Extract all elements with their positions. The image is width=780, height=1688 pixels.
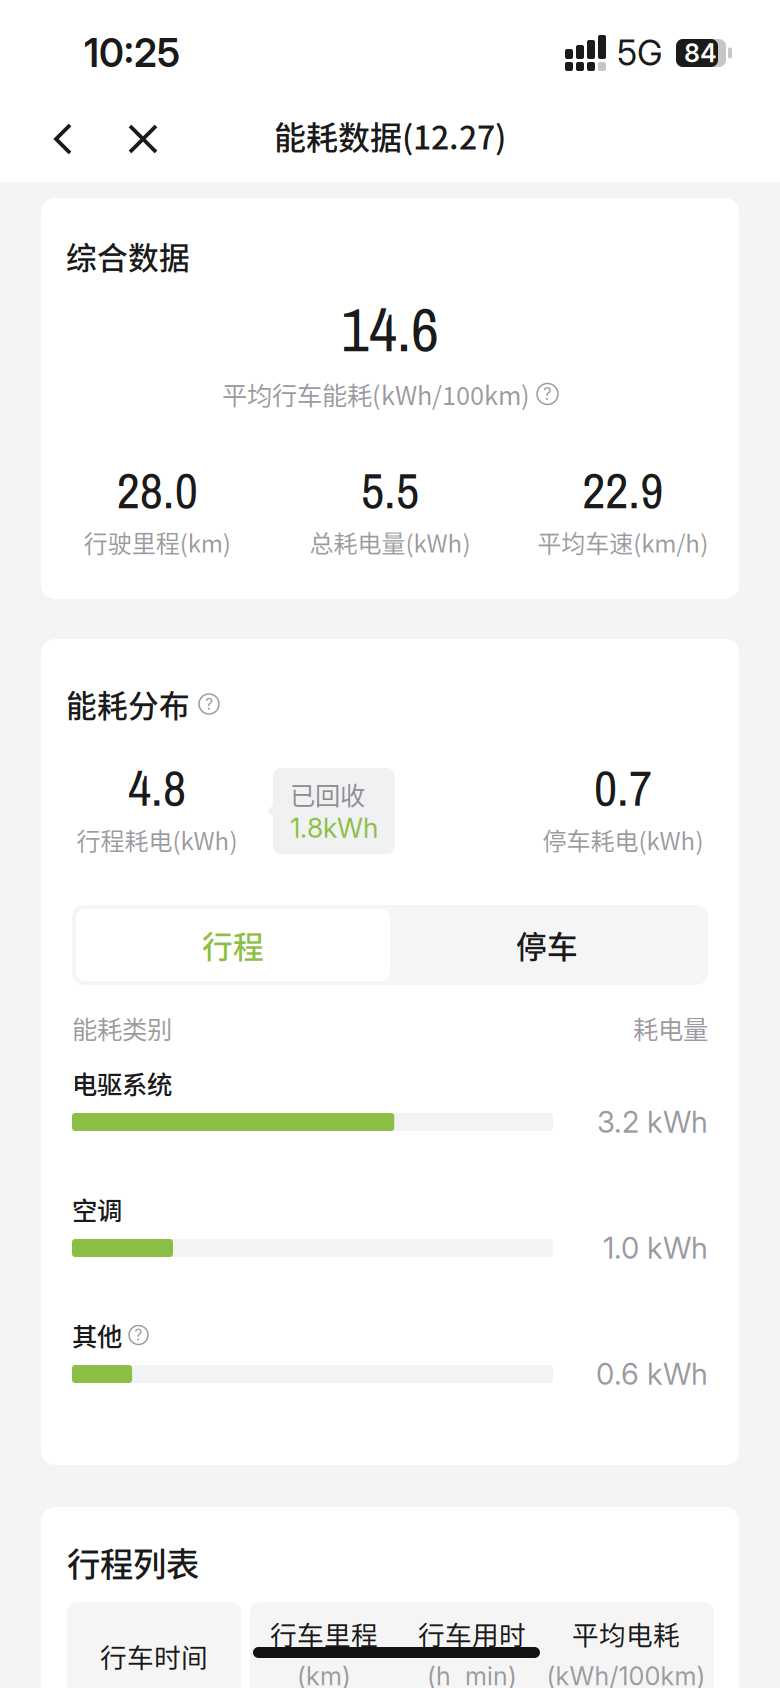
staticText: 1.0 kWh: [603, 1230, 708, 1266]
staticText: 5G: [617, 32, 663, 74]
staticText: 能耗类别: [72, 1010, 172, 1046]
staticText: (h min): [427, 1661, 517, 1688]
staticText: 其他: [72, 1317, 122, 1353]
staticText: 综合数据: [66, 234, 190, 278]
staticText: 停车耗电(kWh): [542, 822, 703, 857]
button[interactable]: 停车: [390, 909, 704, 981]
staticText: 0.6 kWh: [596, 1356, 708, 1392]
staticText: 4.8: [128, 753, 186, 822]
staticText: 能耗分布: [66, 682, 190, 726]
staticText: 行车里程: [270, 1614, 378, 1653]
staticText: 平均车速(km/h): [537, 525, 708, 559]
staticText: 14.6: [341, 288, 439, 370]
staticText: 能耗数据(12.27): [274, 112, 506, 159]
staticText: 3.2 kWh: [597, 1104, 708, 1140]
staticText: 行驶里程(km): [84, 525, 231, 559]
button[interactable]: 行程: [76, 909, 390, 981]
staticText: 5.5: [361, 456, 419, 524]
staticText: 行程: [202, 923, 264, 967]
staticText: 1.8kWh: [290, 812, 378, 844]
staticText: 平均行车能耗(kWh/100km): [222, 376, 530, 412]
staticText: 已回收: [290, 776, 365, 812]
staticText: 10:25: [84, 30, 180, 76]
staticText: ?: [134, 1326, 142, 1344]
staticText: 耗电量: [633, 1010, 708, 1046]
staticText: ?: [543, 384, 552, 404]
staticText: 总耗电量(kWh): [309, 525, 470, 559]
staticText: ?: [205, 694, 213, 714]
staticText: (kWh/100km): [546, 1661, 705, 1688]
staticText: 28.0: [117, 456, 198, 524]
staticText: 0.7: [594, 753, 652, 822]
staticText: 行程列表: [67, 1538, 199, 1586]
staticText: 平均电耗: [572, 1614, 680, 1653]
staticText: 停车: [516, 923, 578, 967]
staticText: 电驱系统: [72, 1065, 172, 1101]
staticText: 22.9: [582, 456, 663, 524]
staticText: 空调: [72, 1191, 122, 1227]
button[interactable]: Close: [117, 108, 169, 170]
staticText: 行程耗电(kWh): [76, 822, 237, 857]
staticText: (km): [297, 1661, 351, 1688]
staticText: 行车用时: [418, 1614, 526, 1653]
staticText: 84: [684, 38, 717, 68]
button[interactable]: Back: [37, 108, 89, 170]
staticText: 行车时间: [100, 1637, 208, 1675]
